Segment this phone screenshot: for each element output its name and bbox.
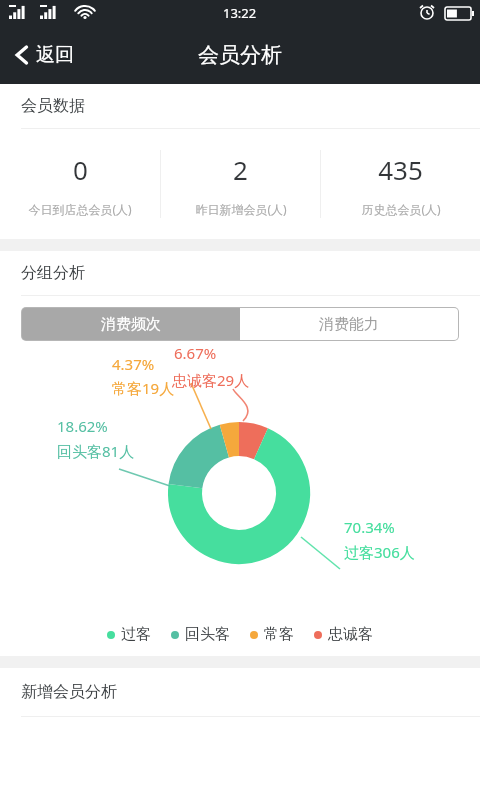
staticText: 6.67%: [174, 343, 217, 363]
staticText: 过客306人: [344, 542, 415, 562]
staticText: 会员分析: [198, 42, 282, 68]
staticText: 18.62%: [57, 416, 108, 436]
staticText: 新增会员分析: [21, 682, 117, 702]
button[interactable]: 消费能力: [240, 308, 458, 340]
staticText: 0: [73, 152, 88, 187]
button[interactable]: 消费频次: [22, 308, 240, 340]
staticText: 返回: [36, 43, 74, 67]
staticText: 435: [378, 152, 423, 187]
staticText: 常客: [264, 625, 294, 644]
staticText: 忠诚客: [328, 625, 373, 644]
staticText: 忠诚客29人: [172, 370, 250, 390]
staticText: 会员数据: [21, 96, 85, 116]
staticText: 13:22: [223, 4, 257, 22]
staticText: 消费频次: [101, 315, 161, 334]
staticText: 常客19人: [112, 378, 175, 398]
staticText: 回头客81人: [57, 441, 135, 461]
button[interactable]: 返回: [0, 26, 88, 84]
staticText: 过客: [121, 625, 151, 644]
staticText: 昨日新增会员(人): [195, 201, 287, 217]
staticText: 分组分析: [21, 263, 85, 283]
staticText: 回头客: [185, 625, 230, 644]
staticText: 4.37%: [112, 354, 155, 374]
staticText: 2: [233, 152, 248, 187]
staticText: 70.34%: [344, 517, 395, 537]
staticText: 今日到店总会员(人): [28, 201, 132, 217]
staticText: 消费能力: [319, 315, 379, 334]
staticText: 历史总会员(人): [361, 201, 441, 217]
